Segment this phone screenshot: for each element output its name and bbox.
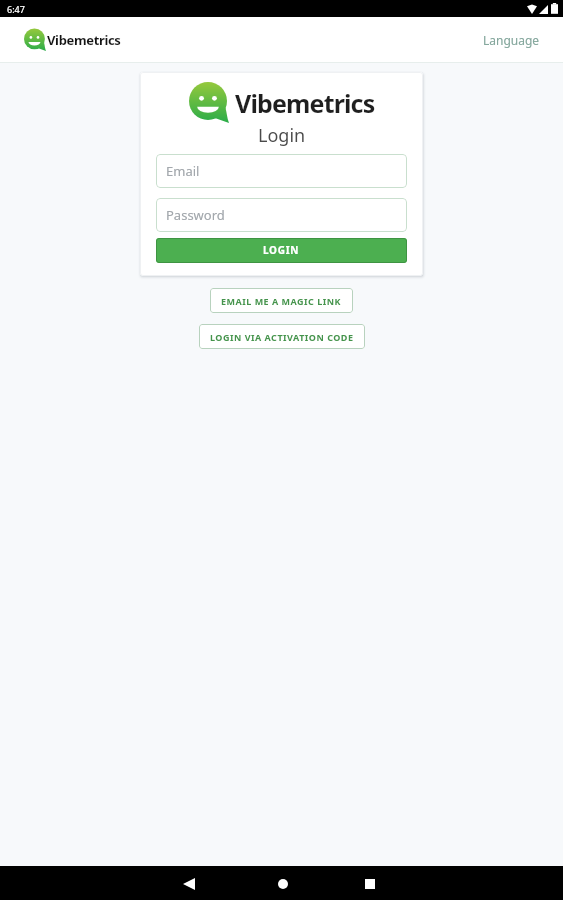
button[interactable]: Password — [156, 198, 407, 232]
staticText: Email — [166, 162, 200, 180]
staticText: EMAIL ME A MAGIC LINK — [221, 295, 342, 307]
button[interactable]: LOGIN VIA ACTIVATION CODE — [199, 324, 365, 349]
button[interactable]: Email — [156, 154, 407, 188]
staticText: Login — [258, 123, 306, 148]
button[interactable]: Vibemetrics — [24, 29, 121, 51]
staticText: Language — [483, 32, 540, 48]
staticText: LOGIN — [263, 243, 300, 257]
staticText: Password — [166, 206, 225, 224]
button[interactable]: Back — [163, 867, 215, 900]
button[interactable]: EMAIL ME A MAGIC LINK — [210, 288, 353, 313]
button[interactable]: Home — [257, 867, 309, 900]
staticText: Vibemetrics — [235, 86, 375, 120]
button[interactable]: LOGIN — [156, 238, 407, 263]
button[interactable]: Language — [483, 32, 540, 48]
staticText: LOGIN VIA ACTIVATION CODE — [210, 331, 354, 343]
staticText: 6:47 — [7, 3, 25, 15]
staticText: Vibemetrics — [47, 31, 121, 49]
button[interactable]: Recents — [344, 867, 396, 900]
